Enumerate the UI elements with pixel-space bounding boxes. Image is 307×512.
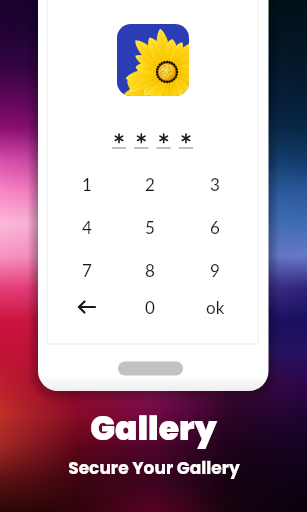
staticText: 0	[145, 297, 155, 317]
button[interactable]: 4	[60, 209, 114, 245]
button[interactable]: ok	[188, 289, 242, 325]
staticText: 4	[82, 217, 92, 237]
staticText: 5	[145, 217, 155, 237]
button[interactable]: 7	[60, 252, 114, 288]
button[interactable]: 2	[123, 166, 177, 202]
staticText: 6	[210, 217, 220, 237]
button[interactable]: 6	[188, 209, 242, 245]
staticText: Gallery	[90, 405, 217, 451]
button[interactable]: 1	[60, 166, 114, 202]
button[interactable]: 5	[123, 209, 177, 245]
staticText: 8	[145, 260, 155, 280]
staticText: 3	[210, 174, 220, 194]
staticText: Secure Your Gallery	[68, 456, 240, 480]
button[interactable]: Backspace	[60, 289, 114, 325]
staticText: 9	[210, 260, 220, 280]
button[interactable]: 0	[123, 289, 177, 325]
button[interactable]: 9	[188, 252, 242, 288]
staticText: ok	[206, 297, 225, 317]
staticText: 2	[145, 174, 155, 194]
staticText: 1	[82, 174, 92, 194]
button[interactable]: 3	[188, 166, 242, 202]
other: Backspace	[78, 298, 96, 316]
staticText: 7	[82, 260, 92, 280]
button[interactable]: 8	[123, 252, 177, 288]
